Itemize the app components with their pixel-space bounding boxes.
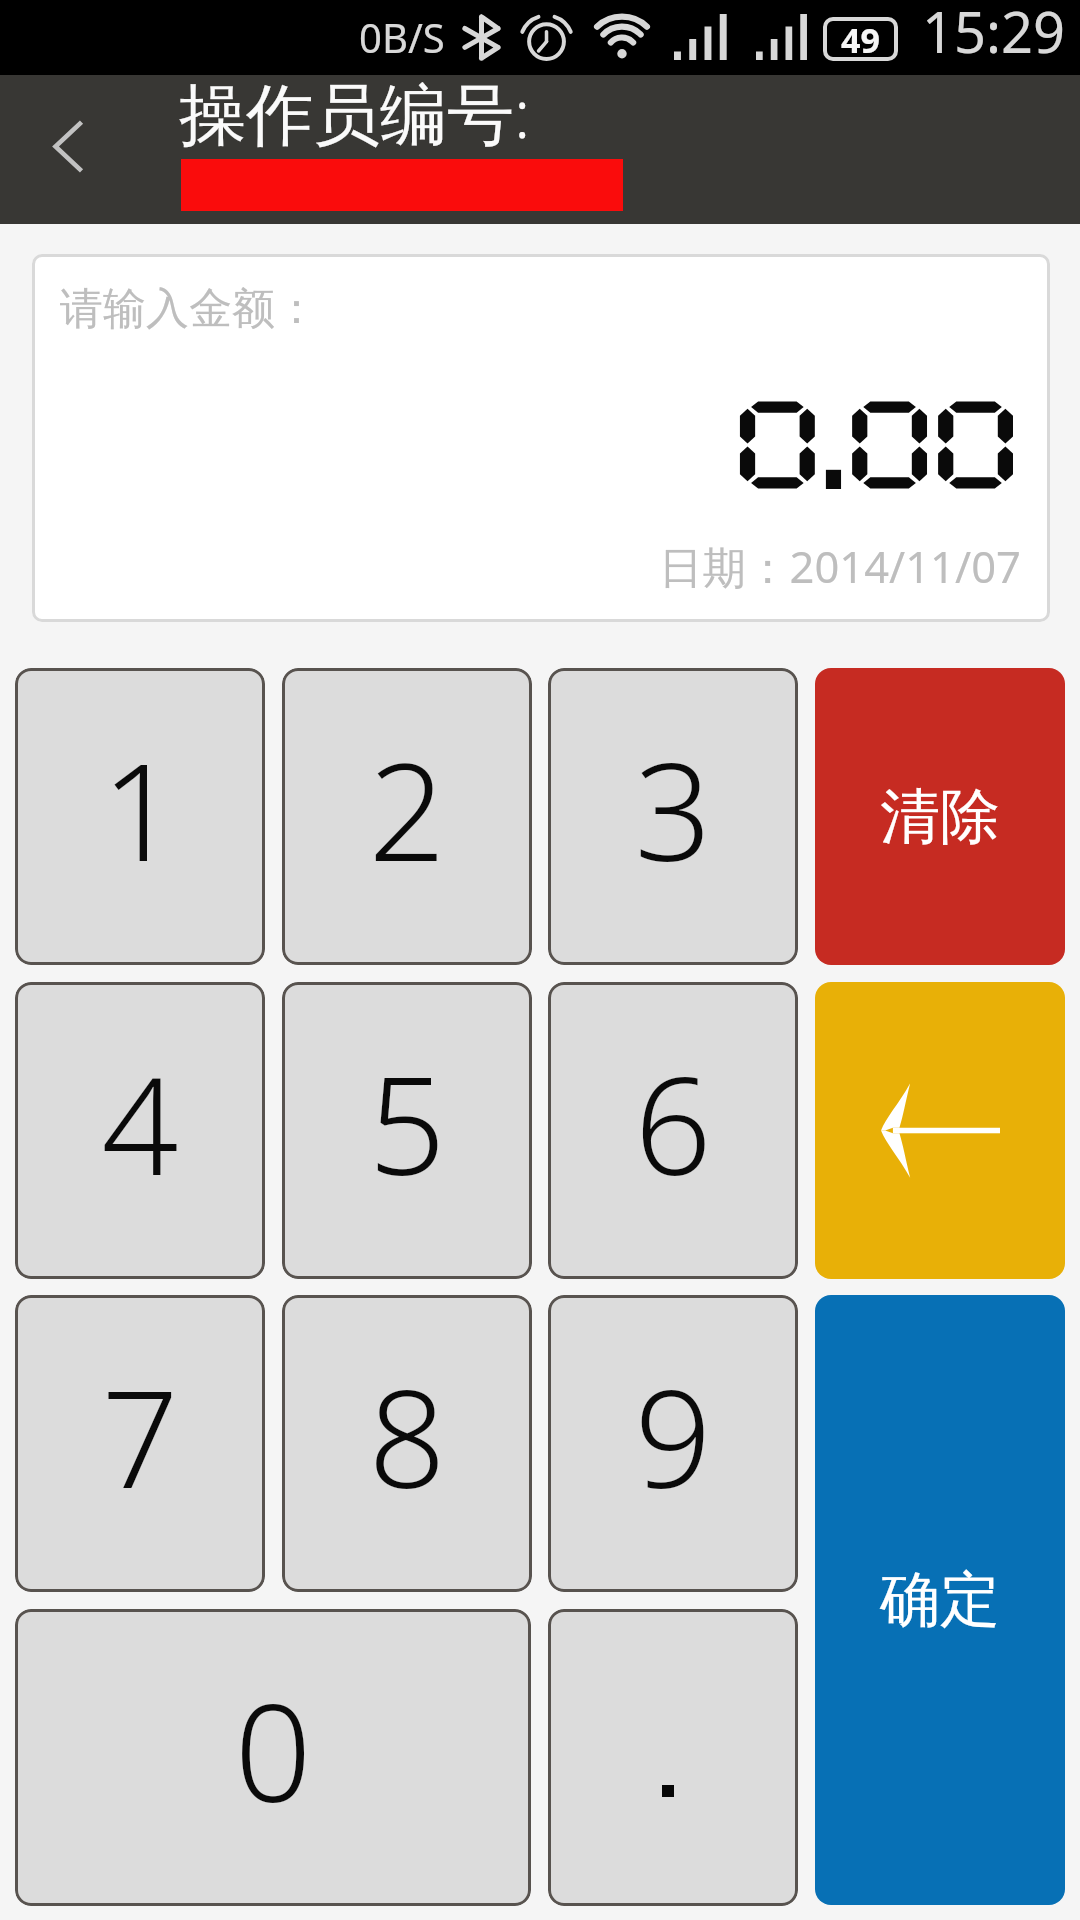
staticText: 8 <box>368 1344 446 1528</box>
staticText: 请输入金额： <box>60 282 318 336</box>
button[interactable]: 8 <box>282 1295 532 1592</box>
staticText: 3 <box>634 717 712 901</box>
button[interactable]: 7 <box>15 1295 265 1592</box>
staticText: 4 <box>101 1031 179 1215</box>
staticText: 1 <box>101 717 179 901</box>
button[interactable]: 确定 <box>815 1295 1065 1905</box>
staticText: 5 <box>368 1031 446 1215</box>
staticText: 日期：2014/11/07 <box>659 536 1021 595</box>
button[interactable] <box>548 1609 798 1906</box>
button[interactable]: 9 <box>548 1295 798 1592</box>
button[interactable]: 4 <box>15 982 265 1279</box>
button[interactable]: 3 <box>548 668 798 965</box>
button[interactable]: 2 <box>282 668 532 965</box>
staticText: 15:29 <box>922 0 1066 68</box>
button[interactable]: 清除 <box>815 668 1065 965</box>
staticText: 操作员编号: <box>179 66 531 158</box>
button[interactable]: Backspace <box>815 982 1065 1279</box>
staticText: 6 <box>634 1031 712 1215</box>
staticText: 0 <box>234 1658 312 1842</box>
button[interactable]: 1 <box>15 668 265 965</box>
staticText: 清除 <box>880 779 1000 855</box>
staticText: 0B/S <box>359 10 445 64</box>
staticText: 9 <box>634 1344 712 1528</box>
button[interactable]: 5 <box>282 982 532 1279</box>
staticText: 2 <box>368 717 446 901</box>
button[interactable]: 6 <box>548 982 798 1279</box>
staticText: 49 <box>841 17 880 61</box>
button[interactable]: Back <box>0 75 134 224</box>
staticText: 7 <box>101 1344 179 1528</box>
button[interactable]: 0 <box>15 1609 531 1906</box>
staticText: 确定 <box>880 1562 1000 1638</box>
